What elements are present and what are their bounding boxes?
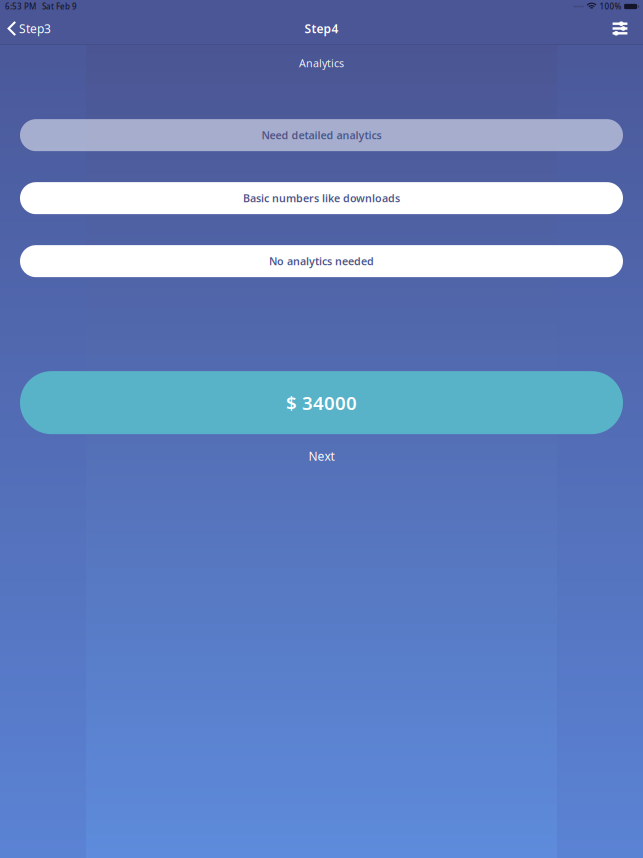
- staticText: Need detailed analytics: [261, 128, 381, 142]
- staticText: No analytics needed: [269, 254, 374, 268]
- staticText: Analytics: [299, 56, 344, 70]
- staticText: $ 34000: [286, 390, 357, 415]
- button[interactable]: Step3: [0, 15, 61, 41]
- staticText: Sat Feb 9: [42, 1, 77, 12]
- button[interactable]: No analytics needed: [20, 245, 623, 277]
- staticText: 6:53 PM: [5, 1, 36, 12]
- staticText: Step4: [304, 20, 338, 36]
- button[interactable]: Basic numbers like downloads: [20, 182, 623, 214]
- button[interactable]: Next: [296, 447, 346, 465]
- staticText: Step3: [19, 20, 51, 36]
- staticText: 100%: [600, 1, 622, 12]
- staticText: Basic numbers like downloads: [243, 191, 400, 205]
- button[interactable]: $ 34000: [20, 371, 623, 434]
- staticText: Next: [308, 448, 334, 464]
- button[interactable]: Filter settings: [602, 15, 643, 41]
- button[interactable]: Need detailed analytics: [20, 119, 623, 151]
